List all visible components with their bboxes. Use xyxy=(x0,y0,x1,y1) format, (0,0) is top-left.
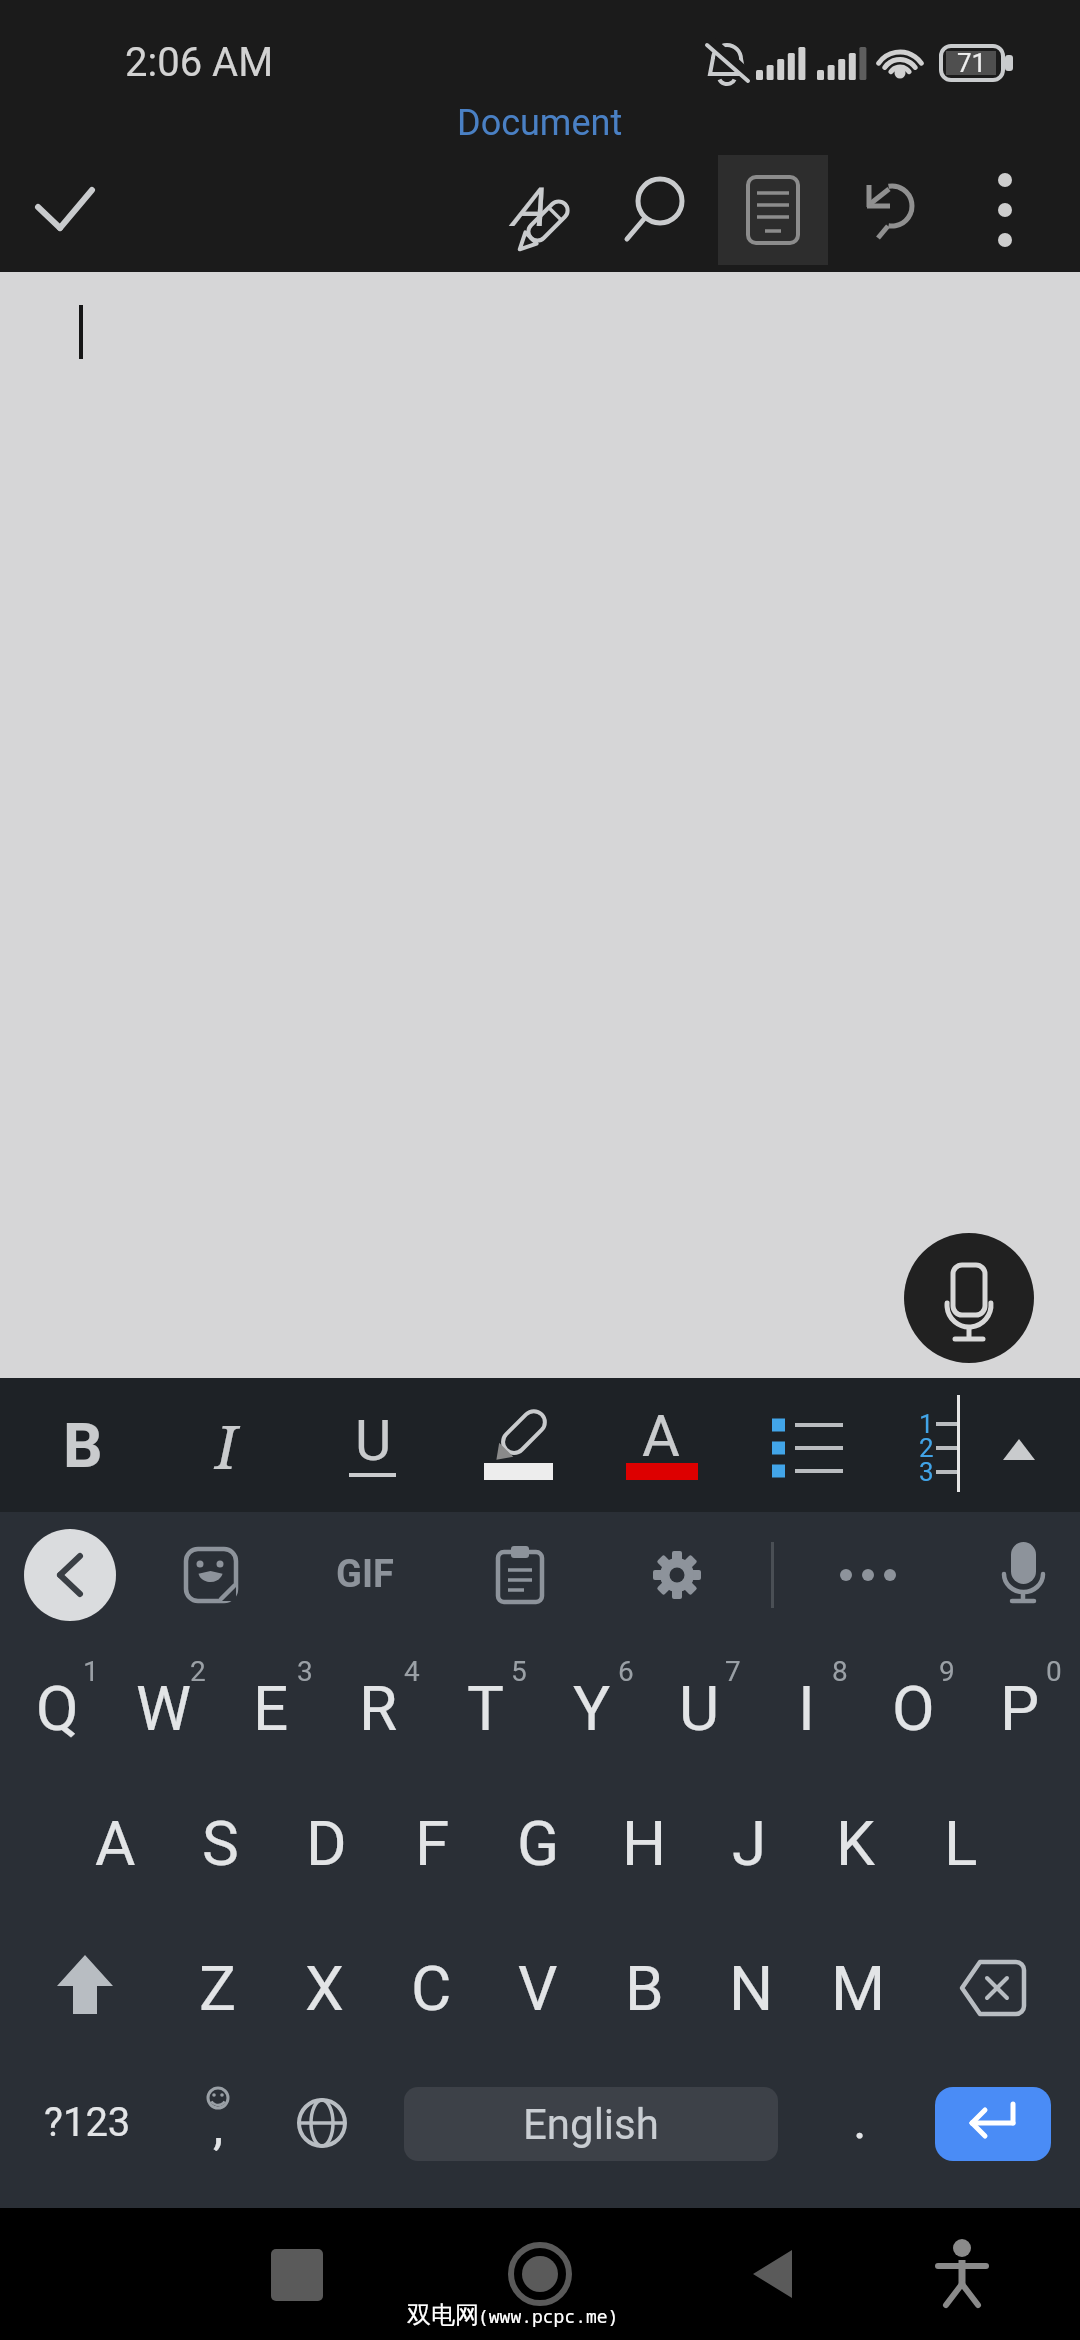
staticText: English xyxy=(523,2100,659,2149)
staticText: 4 xyxy=(404,1655,420,1688)
staticText: 0 xyxy=(1046,1655,1062,1688)
staticText: V xyxy=(518,1952,558,2025)
button[interactable] xyxy=(20,165,110,255)
button[interactable]: A xyxy=(483,162,573,252)
button[interactable] xyxy=(632,1530,722,1620)
button[interactable] xyxy=(960,165,1050,255)
button[interactable]: F xyxy=(382,1793,482,1893)
button[interactable]: W xyxy=(114,1658,214,1758)
staticText: G xyxy=(517,1807,560,1880)
staticText: 2:06 AM xyxy=(125,39,274,86)
button[interactable] xyxy=(823,1530,913,1620)
button[interactable]: I xyxy=(76,1401,376,1491)
button[interactable]: I xyxy=(756,1658,856,1758)
staticText: GIF xyxy=(336,1552,394,1597)
button[interactable] xyxy=(760,1395,860,1495)
staticText: L xyxy=(944,1807,978,1880)
button[interactable] xyxy=(24,1529,116,1621)
button[interactable]: Q xyxy=(7,1658,107,1758)
button[interactable]: H xyxy=(594,1793,694,1893)
button[interactable] xyxy=(247,2222,347,2326)
button[interactable] xyxy=(35,1940,135,2036)
staticText: 2 xyxy=(190,1655,206,1688)
button[interactable] xyxy=(912,2222,1012,2326)
button[interactable]: P xyxy=(970,1658,1070,1758)
staticText: Y xyxy=(573,1672,611,1745)
staticText: E xyxy=(253,1672,289,1745)
button[interactable] xyxy=(978,1530,1068,1620)
button[interactable] xyxy=(845,165,935,255)
button[interactable]: K xyxy=(805,1793,905,1893)
staticText: 2 xyxy=(919,1433,934,1463)
staticText: 7 xyxy=(725,1655,741,1688)
button[interactable]: B xyxy=(0,1400,233,1490)
button[interactable]: M xyxy=(808,1938,908,2038)
staticText: A xyxy=(642,1402,680,1470)
button[interactable]: R xyxy=(328,1658,428,1758)
button[interactable]: S xyxy=(170,1793,270,1893)
button[interactable] xyxy=(935,2087,1051,2161)
staticText: S xyxy=(202,1807,239,1880)
button[interactable]: X xyxy=(274,1938,374,2038)
button[interactable]: U xyxy=(223,1396,523,1486)
button[interactable]: O xyxy=(863,1658,963,1758)
staticText: 双电网 xyxy=(407,2300,479,2330)
button[interactable]: C xyxy=(381,1938,481,2038)
button[interactable] xyxy=(943,1940,1043,2036)
button[interactable]: , xyxy=(188,2091,248,2161)
staticText: 3 xyxy=(297,1655,313,1688)
staticText: U xyxy=(679,1672,720,1745)
button[interactable]: Z xyxy=(168,1938,268,2038)
staticText: 1 xyxy=(83,1655,99,1688)
staticText: A xyxy=(511,176,546,239)
button[interactable] xyxy=(615,1395,715,1495)
staticText: 5 xyxy=(511,1655,527,1688)
button[interactable] xyxy=(615,165,705,255)
button[interactable] xyxy=(725,2222,825,2326)
staticText: 1 xyxy=(919,1409,934,1439)
button[interactable]: English xyxy=(404,2087,778,2161)
button[interactable] xyxy=(904,1233,1034,1363)
staticText: I xyxy=(798,1672,815,1745)
staticText: D xyxy=(306,1807,347,1880)
button[interactable] xyxy=(490,2222,590,2326)
staticText: U xyxy=(355,1408,392,1474)
button[interactable]: G xyxy=(488,1793,588,1893)
button[interactable]: N xyxy=(701,1938,801,2038)
button[interactable] xyxy=(272,2080,372,2166)
staticText: N xyxy=(729,1952,774,2025)
staticText: Document xyxy=(457,102,623,144)
button[interactable]: U xyxy=(649,1658,749,1758)
button[interactable]: T xyxy=(435,1658,535,1758)
staticText: H xyxy=(622,1807,667,1880)
button[interactable] xyxy=(975,1400,1065,1490)
button[interactable]: A xyxy=(65,1793,165,1893)
button[interactable] xyxy=(165,1530,255,1620)
button[interactable]: V xyxy=(488,1938,588,2038)
button[interactable]: . xyxy=(830,2080,890,2160)
button[interactable] xyxy=(475,1530,565,1620)
staticText: (www.pcpc.me) xyxy=(478,2304,619,2329)
button[interactable]: L xyxy=(911,1793,1011,1893)
button[interactable]: B xyxy=(594,1938,694,2038)
staticText: M xyxy=(831,1952,886,2025)
staticText: P xyxy=(1000,1672,1040,1745)
staticText: B xyxy=(625,1952,664,2025)
button[interactable]: J xyxy=(699,1793,799,1893)
staticText: O xyxy=(892,1672,935,1745)
button[interactable]: ?123 xyxy=(17,2082,157,2162)
button[interactable]: E xyxy=(221,1658,321,1758)
button[interactable]: Y xyxy=(542,1658,642,1758)
button[interactable] xyxy=(885,1395,985,1495)
staticText: J xyxy=(732,1807,767,1880)
staticText: , xyxy=(213,2096,224,2157)
button[interactable]: GIF xyxy=(215,1529,515,1619)
button[interactable]: A xyxy=(511,1391,811,1481)
staticText: F xyxy=(415,1807,450,1880)
button[interactable] xyxy=(718,155,828,265)
button[interactable] xyxy=(475,1395,575,1495)
staticText: 9 xyxy=(939,1655,955,1688)
staticText: T xyxy=(467,1672,504,1745)
button[interactable]: D xyxy=(276,1793,376,1893)
staticText: ?123 xyxy=(44,2099,131,2146)
